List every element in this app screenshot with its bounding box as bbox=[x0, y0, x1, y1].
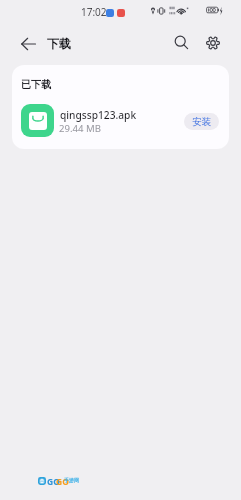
staticText: GO bbox=[47, 476, 60, 488]
staticText: 安装 bbox=[192, 116, 211, 128]
button[interactable]: Search bbox=[164, 25, 199, 60]
staticText: qingssp123.apk bbox=[60, 108, 137, 122]
button[interactable]: qingssp123.apk bbox=[12, 96, 229, 146]
staticText: 下载 bbox=[47, 36, 71, 51]
staticText: 17:02 bbox=[81, 5, 107, 19]
staticText: 手游网 bbox=[64, 477, 79, 483]
staticText: 29.44 MB bbox=[59, 122, 101, 135]
staticText: 已下载 bbox=[21, 78, 51, 91]
staticText: GO bbox=[56, 476, 69, 488]
button[interactable]: Settings bbox=[195, 25, 230, 60]
button[interactable]: Back bbox=[11, 26, 46, 61]
button[interactable]: 安装 bbox=[184, 113, 219, 130]
